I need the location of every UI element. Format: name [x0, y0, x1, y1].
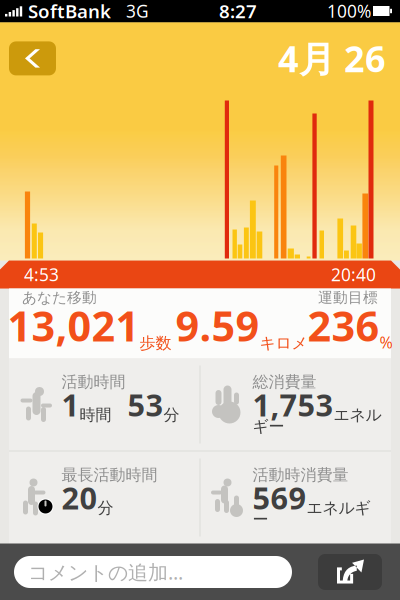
staticText: 20	[61, 477, 97, 518]
staticText: キロメ	[259, 333, 307, 353]
staticText: 活動時間	[61, 372, 125, 392]
staticText: 3G	[111, 0, 149, 22]
staticText: 53	[111, 384, 163, 425]
button[interactable]: コメントの追加...	[14, 556, 292, 588]
staticText: ー	[252, 510, 268, 529]
staticText: 569	[252, 477, 306, 518]
staticText: ギー	[252, 417, 284, 436]
staticText: コメントの追加...	[28, 559, 183, 585]
staticText: 時間	[79, 405, 111, 425]
staticText: 4:53	[24, 263, 59, 286]
staticText: 4月 26	[278, 34, 386, 82]
staticText: 100%	[327, 0, 371, 22]
staticText: 活動時消費量	[252, 465, 348, 485]
staticText: 最長活動時間	[61, 465, 157, 485]
staticText: 歩数	[139, 333, 171, 353]
staticText: 20:40	[331, 263, 376, 286]
staticText: 8:27	[219, 0, 257, 23]
staticText: エネル	[333, 405, 381, 425]
staticText: 総消費量	[252, 372, 316, 392]
staticText: あなた移動	[22, 288, 97, 306]
staticText: 運動目標	[318, 288, 378, 306]
staticText: 1,753	[252, 384, 333, 425]
staticText: 分	[163, 405, 179, 425]
staticText: %	[379, 332, 392, 353]
staticText: 分	[97, 498, 113, 518]
staticText: エネルギ	[306, 498, 370, 518]
button[interactable]: Share	[318, 554, 382, 590]
staticText: 13,021	[7, 298, 139, 353]
staticText: 236	[307, 298, 379, 353]
staticText: 9.59	[175, 298, 259, 353]
staticText: 1	[61, 384, 79, 425]
button[interactable]: Back	[9, 41, 56, 75]
staticText: SoftBank	[23, 0, 111, 23]
